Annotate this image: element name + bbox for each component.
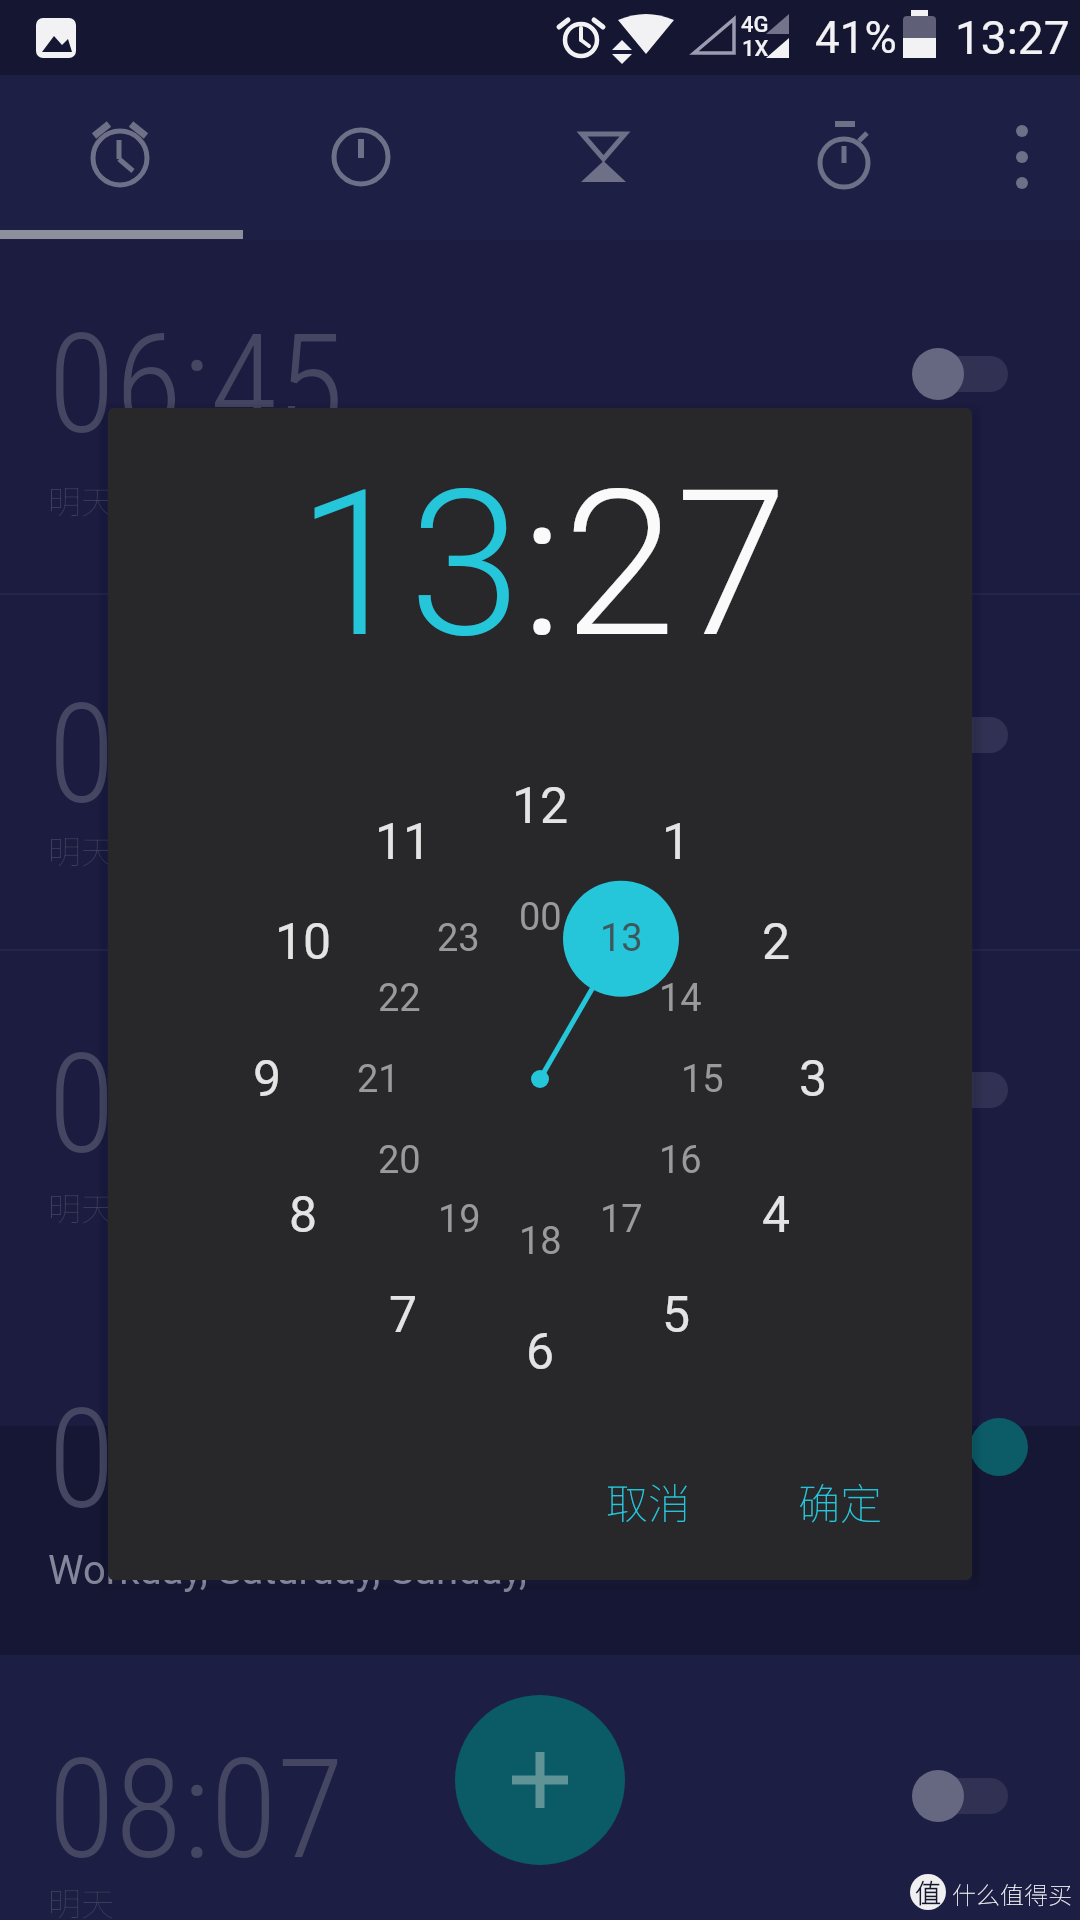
staticText: 23 bbox=[437, 916, 480, 961]
staticText: 00 bbox=[519, 895, 562, 940]
staticText: 9 bbox=[253, 1050, 282, 1109]
staticText: 06:50 bbox=[48, 674, 345, 836]
staticText: 06:45 bbox=[48, 304, 345, 466]
button[interactable] bbox=[972, 75, 1080, 240]
staticText: 20 bbox=[378, 1138, 421, 1183]
staticText: 16 bbox=[659, 1138, 702, 1183]
staticText: 明天 bbox=[48, 476, 114, 524]
staticText: 41% bbox=[815, 12, 897, 64]
button[interactable] bbox=[486, 75, 729, 240]
staticText: 14 bbox=[659, 976, 702, 1021]
staticText: 明天 bbox=[48, 1878, 114, 1920]
staticText: 什么值得买 bbox=[952, 1876, 1072, 1911]
staticText: 19 bbox=[438, 1197, 481, 1242]
staticText: 明天 bbox=[48, 1183, 114, 1231]
button[interactable] bbox=[898, 1058, 1022, 1122]
staticText: 07:15 bbox=[48, 1024, 345, 1186]
staticText: 15 bbox=[681, 1057, 724, 1102]
staticText: 13:27 bbox=[955, 11, 1070, 65]
button[interactable] bbox=[898, 1764, 1022, 1828]
staticText: 1 bbox=[662, 813, 691, 872]
button[interactable] bbox=[898, 703, 1022, 767]
staticText: 取消 bbox=[606, 1470, 691, 1531]
staticText: 值 bbox=[915, 1873, 942, 1911]
staticText: 8 bbox=[289, 1186, 318, 1245]
staticText: 08:07 bbox=[48, 1729, 345, 1891]
staticText: 21 bbox=[357, 1057, 400, 1102]
staticText: 5 bbox=[662, 1286, 691, 1345]
button[interactable] bbox=[898, 342, 1022, 406]
staticText: 12 bbox=[512, 777, 569, 836]
staticText: 18 bbox=[519, 1219, 562, 1264]
staticText: 13 bbox=[600, 916, 643, 961]
button[interactable] bbox=[455, 1695, 625, 1865]
staticText: 明天 bbox=[48, 826, 114, 874]
button[interactable]: 确定 bbox=[778, 1455, 903, 1545]
staticText: Workday, Saturday, Sunday, bbox=[48, 1547, 527, 1594]
staticText: 17 bbox=[600, 1197, 643, 1242]
staticText: 4 bbox=[762, 1186, 791, 1245]
button[interactable] bbox=[0, 75, 243, 240]
button[interactable] bbox=[729, 75, 972, 240]
button[interactable] bbox=[243, 75, 486, 240]
staticText: 07:30 bbox=[48, 1379, 345, 1541]
staticText: 22 bbox=[378, 976, 421, 1021]
button[interactable]: 取消 bbox=[586, 1455, 711, 1545]
staticText: 10 bbox=[275, 913, 332, 972]
staticText: 13:27 bbox=[297, 447, 788, 684]
staticText: 确定 bbox=[798, 1470, 883, 1531]
staticText: 3 bbox=[799, 1050, 828, 1109]
staticText: 4G bbox=[741, 12, 769, 38]
staticText: 7 bbox=[389, 1286, 418, 1345]
staticText: 2 bbox=[762, 913, 791, 972]
staticText: 1X bbox=[742, 36, 769, 62]
staticText: 11 bbox=[375, 813, 432, 872]
staticText: 6 bbox=[526, 1323, 555, 1382]
